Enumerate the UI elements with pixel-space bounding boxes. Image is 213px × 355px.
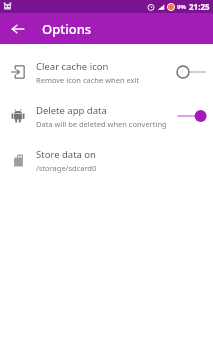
button[interactable]: Toggle off [175, 62, 207, 82]
staticText: Options [42, 20, 92, 38]
staticText: 21:25 [189, 1, 210, 12]
button[interactable]: Toggle on [175, 106, 207, 126]
staticText: Data will be deleted when converting [36, 119, 167, 129]
button[interactable]: Store data on [0, 138, 213, 182]
button[interactable]: Back [6, 17, 30, 41]
staticText: Clear cache icon [36, 60, 109, 73]
staticText: Remove icon cache when exit [36, 75, 140, 85]
staticText: 9% [177, 3, 186, 11]
staticText: Delete app data [36, 104, 107, 117]
button[interactable]: Clear cache icon [0, 50, 213, 94]
staticText: Store data on [36, 148, 96, 161]
staticText: /storage/sdcard0 [36, 163, 97, 173]
button[interactable]: Delete app data [0, 94, 213, 138]
